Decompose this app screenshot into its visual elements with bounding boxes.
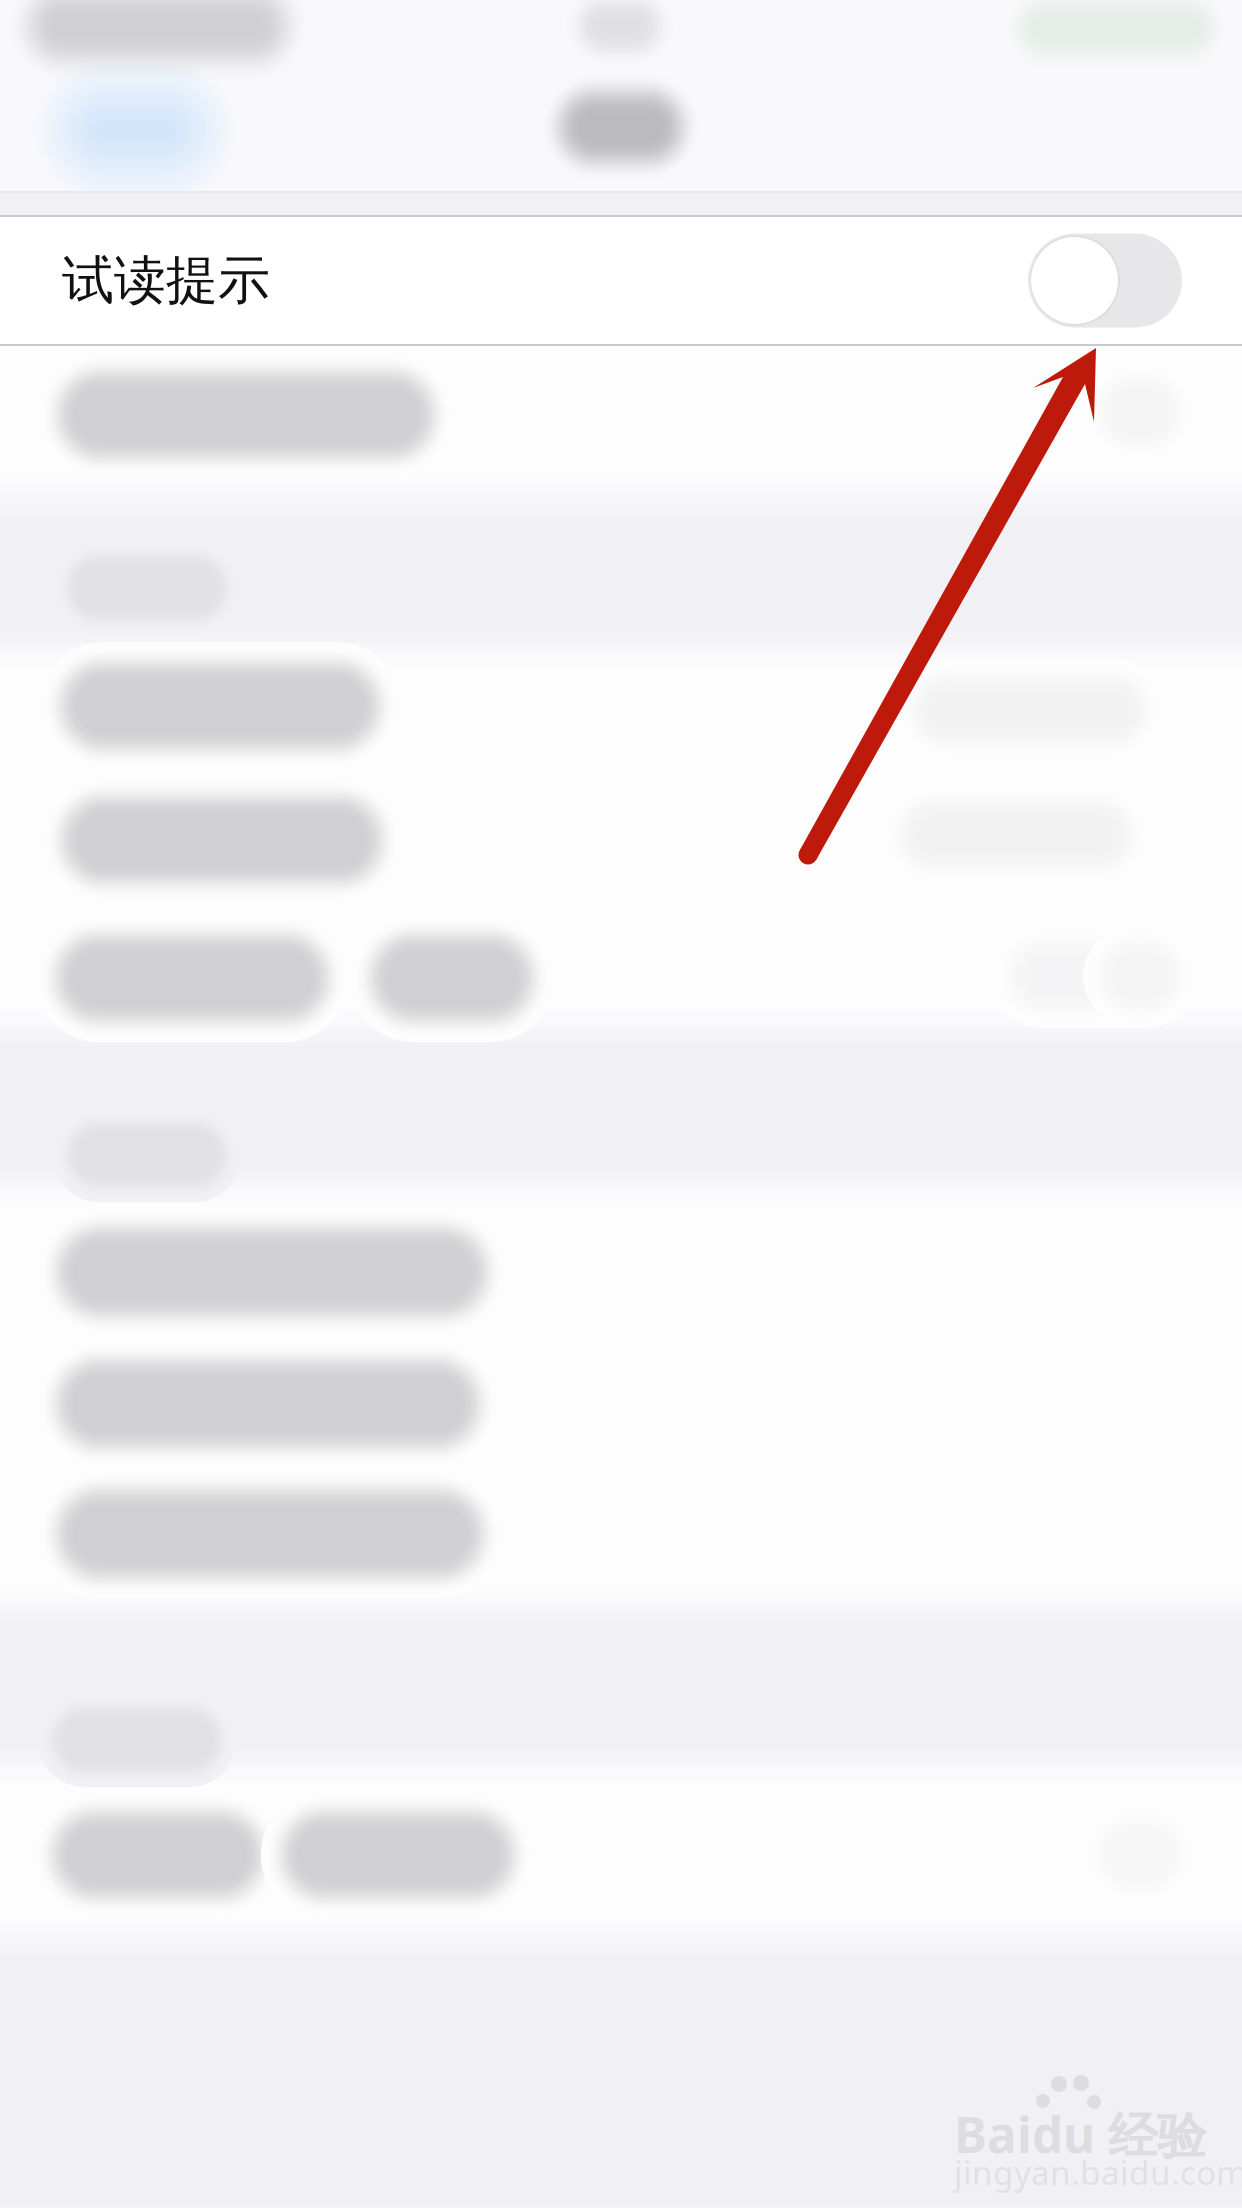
staticText: 试读提示: [62, 249, 270, 312]
button[interactable]: 试读提示: [0, 215, 1242, 346]
staticText: Baidu 经验: [954, 2101, 1206, 2167]
staticText: jingyan.baidu.com: [954, 2150, 1242, 2194]
